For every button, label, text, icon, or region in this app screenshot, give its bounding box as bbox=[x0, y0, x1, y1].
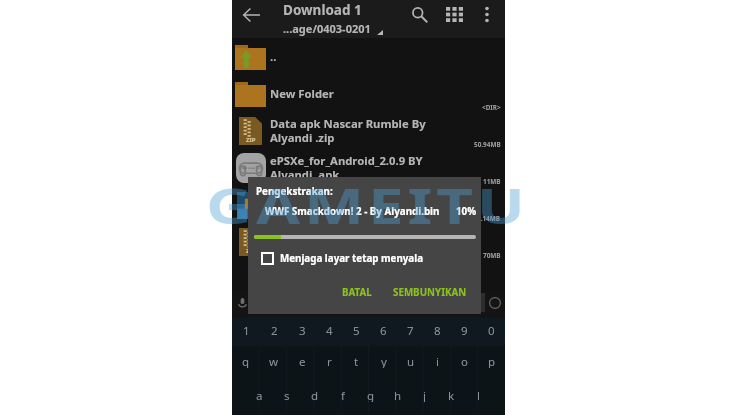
staticText: g bbox=[367, 388, 375, 402]
button[interactable]: l bbox=[465, 388, 492, 402]
button[interactable]: s bbox=[273, 388, 301, 402]
staticText: s bbox=[284, 388, 290, 402]
staticText: j bbox=[423, 388, 426, 402]
staticText: ZIP bbox=[246, 247, 256, 255]
staticText: WWF Smackdown! 2 - By Alyandi.bin bbox=[265, 205, 456, 218]
staticText: i bbox=[436, 354, 439, 368]
staticText: 3 bbox=[299, 323, 306, 337]
staticText: Pengekstrakan: bbox=[256, 185, 333, 198]
button[interactable]: u bbox=[397, 354, 424, 368]
staticText: 2.14MB bbox=[477, 214, 501, 223]
button[interactable]: Emoji bbox=[485, 293, 505, 313]
staticText: 10% bbox=[456, 205, 477, 218]
staticText: w bbox=[269, 354, 279, 368]
button[interactable]: 8 bbox=[424, 323, 451, 337]
button[interactable]: t bbox=[343, 354, 370, 368]
button[interactable]: e bbox=[288, 354, 316, 368]
button[interactable]: y bbox=[370, 354, 397, 368]
staticText: a bbox=[256, 388, 263, 402]
staticText: u bbox=[407, 354, 415, 368]
staticText: t bbox=[354, 354, 359, 368]
button[interactable]: Gambar WWF Smackdown! 2 By Alyandi.jpg bbox=[232, 186, 505, 223]
button[interactable]: a bbox=[245, 388, 273, 402]
staticText: ...age/0403-0201 bbox=[283, 21, 371, 36]
staticText: ZIP bbox=[246, 136, 256, 144]
button[interactable]: d bbox=[301, 388, 329, 402]
staticText: 11MB bbox=[483, 177, 501, 186]
button[interactable]: 4 bbox=[316, 323, 343, 337]
button[interactable]: w bbox=[260, 354, 288, 368]
staticText: Data apk Nascar Rumble By Alyandi .zip bbox=[270, 116, 501, 145]
button[interactable]: ePSXe_for_Android_2.0.9 BY Alyandi .apk bbox=[232, 149, 505, 186]
button[interactable]: Back bbox=[236, 0, 266, 30]
staticText: WWF Smackdown! 2 - By Alyandi.zip bbox=[270, 227, 501, 256]
staticText: Gambar WWF Smackdown! 2 By Alyandi.jpg bbox=[270, 190, 501, 219]
button[interactable]: r bbox=[316, 354, 343, 368]
staticText: o bbox=[461, 354, 468, 368]
button[interactable]: 5 bbox=[343, 323, 370, 337]
staticText: d bbox=[311, 388, 319, 402]
button[interactable]: i bbox=[424, 354, 451, 368]
button[interactable]: q bbox=[232, 354, 260, 368]
staticText: y bbox=[381, 354, 387, 368]
button[interactable]: 7 bbox=[397, 323, 424, 337]
button[interactable]: 0 bbox=[478, 323, 505, 337]
staticText: GAMEITU bbox=[206, 172, 530, 239]
button[interactable]: Grid view bbox=[440, 0, 469, 29]
staticText: 50.94MB bbox=[474, 140, 501, 149]
button[interactable]: g bbox=[357, 388, 384, 402]
staticText: .. bbox=[270, 49, 501, 64]
button[interactable]: ZIP bbox=[232, 112, 505, 149]
staticText: f bbox=[341, 388, 345, 402]
button[interactable]: f bbox=[329, 388, 357, 402]
button[interactable]: 3 bbox=[288, 323, 316, 337]
button[interactable]: 1 bbox=[232, 323, 260, 337]
staticText: Menjaga layar tetap menyala bbox=[280, 252, 424, 265]
staticText: k bbox=[448, 388, 455, 402]
button[interactable]: SEMBUNYIKAN bbox=[389, 282, 471, 303]
staticText: 5 bbox=[353, 323, 360, 337]
button[interactable]: New Folder bbox=[232, 75, 505, 112]
staticText: 4 bbox=[326, 323, 333, 337]
button[interactable]: o bbox=[451, 354, 478, 368]
staticText: h bbox=[394, 388, 402, 402]
staticText: 6 bbox=[380, 323, 387, 337]
button[interactable]: ZIP bbox=[232, 223, 505, 260]
button[interactable]: BATAL bbox=[338, 282, 376, 303]
staticText: 0 bbox=[488, 323, 495, 337]
button[interactable]: 2 bbox=[260, 323, 288, 337]
staticText: p bbox=[488, 354, 496, 368]
staticText: New Folder bbox=[270, 86, 501, 101]
staticText: q bbox=[242, 354, 250, 368]
button[interactable]: p bbox=[478, 354, 505, 368]
staticText: 8 bbox=[434, 323, 441, 337]
staticText: 7 bbox=[407, 323, 414, 337]
button[interactable]: Search bbox=[405, 0, 434, 29]
button[interactable]: k bbox=[438, 388, 465, 402]
staticText: l bbox=[477, 388, 480, 402]
button[interactable]: j bbox=[411, 388, 438, 402]
staticText: BATAL bbox=[342, 286, 372, 299]
button[interactable]: 9 bbox=[451, 323, 478, 337]
button[interactable]: 6 bbox=[370, 323, 397, 337]
staticText: 70MB bbox=[483, 251, 501, 260]
staticText: r bbox=[327, 354, 332, 368]
button[interactable]: Voice input bbox=[232, 293, 252, 313]
staticText: 9 bbox=[461, 323, 468, 337]
staticText: Download 1 bbox=[283, 1, 362, 19]
staticText: ePSXe_for_Android_2.0.9 BY Alyandi .apk bbox=[270, 153, 501, 182]
staticText: e bbox=[299, 354, 306, 368]
staticText: 1 bbox=[243, 323, 250, 337]
staticText: <DIR> bbox=[482, 103, 501, 112]
button[interactable]: .. bbox=[232, 38, 505, 75]
button[interactable]: Menjaga layar tetap menyala bbox=[261, 252, 424, 265]
staticText: 2 bbox=[271, 323, 278, 337]
button[interactable]: More options bbox=[472, 0, 501, 29]
staticText: SEMBUNYIKAN bbox=[393, 286, 467, 299]
button[interactable]: h bbox=[384, 388, 411, 402]
